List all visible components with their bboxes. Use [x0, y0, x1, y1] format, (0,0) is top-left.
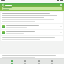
button[interactable]	[2, 7, 62, 10]
button[interactable]: Back	[2, 4, 4, 6]
button[interactable]: Profile	[50, 59, 54, 64]
button[interactable]	[1, 12, 63, 23]
button[interactable]	[1, 36, 63, 41]
button[interactable]	[1, 24, 63, 29]
button[interactable]	[1, 30, 63, 35]
button[interactable]	[0, 54, 64, 58]
button[interactable]: Home	[10, 59, 14, 64]
button[interactable]: Search	[23, 59, 27, 64]
button[interactable]: Back	[0, 3, 64, 11]
button[interactable]: Saved	[37, 59, 41, 64]
